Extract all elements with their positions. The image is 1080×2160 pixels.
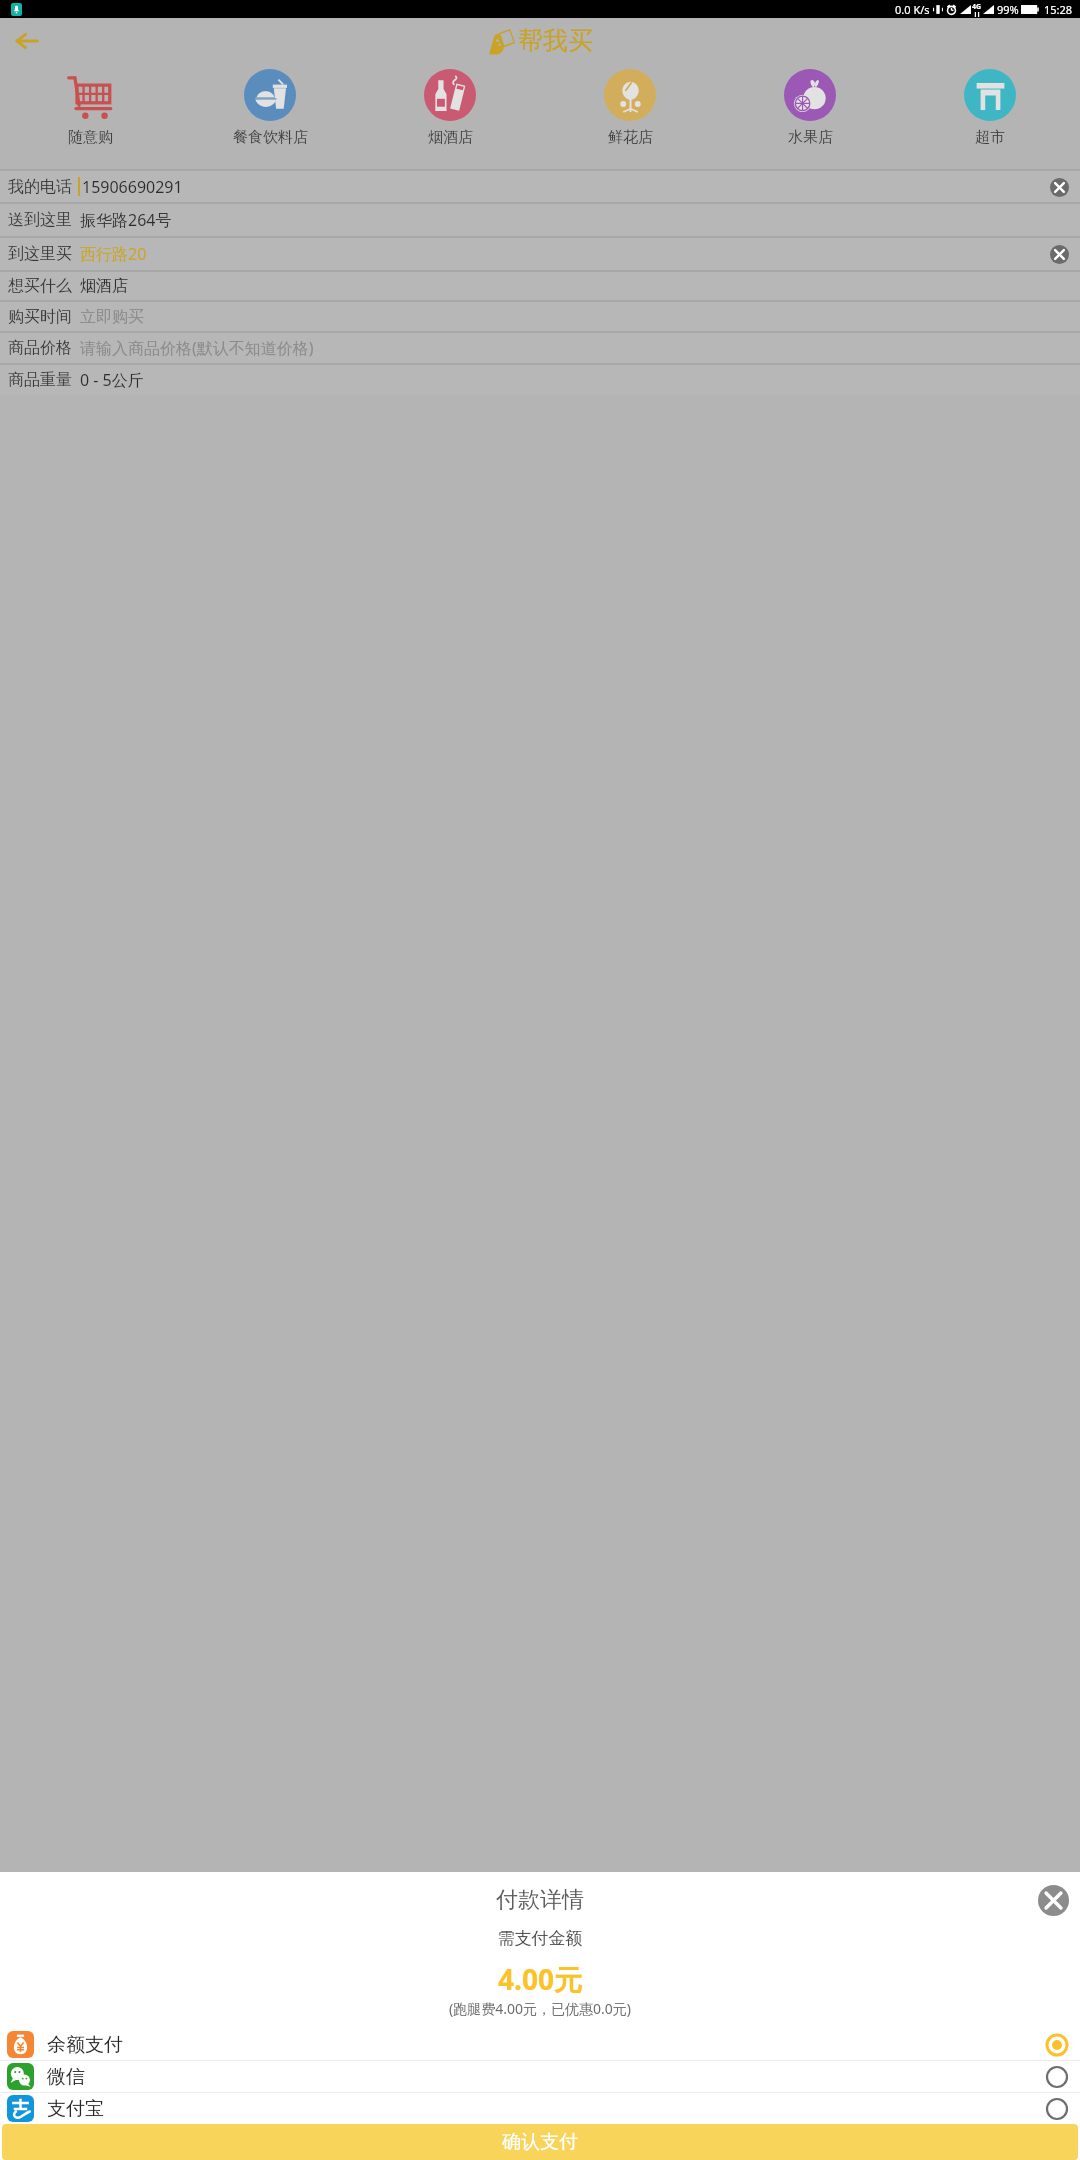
button[interactable]: 到这里买 bbox=[0, 238, 1080, 270]
staticText: 水果店 bbox=[788, 128, 833, 147]
staticText: 振华路264号 bbox=[80, 209, 172, 231]
button[interactable]: Back bbox=[5, 19, 49, 63]
button[interactable]: 商品价格 bbox=[0, 333, 1080, 363]
staticText: 我的电话 bbox=[8, 177, 72, 197]
button[interactable]: 超市 bbox=[900, 69, 1080, 157]
staticText: 随意购 bbox=[68, 128, 113, 147]
button[interactable]: 确认支付 bbox=[2, 2124, 1078, 2160]
staticText: 想买什么 bbox=[8, 276, 72, 296]
staticText: 购买时间 bbox=[8, 307, 72, 327]
button[interactable]: 微信 bbox=[0, 2061, 1080, 2092]
staticText: 确认支付 bbox=[502, 2130, 578, 2154]
staticText: (跑腿费4.00元，已优惠0.0元) bbox=[0, 1999, 1080, 2018]
staticText: 0 - 5公斤 bbox=[80, 369, 144, 391]
staticText: 付款详情 bbox=[496, 1886, 584, 1914]
button[interactable]: 我的电话 bbox=[0, 171, 1080, 202]
staticText: 99% bbox=[997, 2, 1019, 17]
button[interactable]: Close bbox=[1034, 1881, 1072, 1919]
staticText: 鲜花店 bbox=[608, 128, 653, 147]
button[interactable]: Clear bbox=[1046, 241, 1072, 267]
button[interactable]: 购买时间 bbox=[0, 302, 1080, 331]
staticText: 商品价格 bbox=[8, 338, 72, 358]
button[interactable]: Clear bbox=[1046, 174, 1072, 200]
staticText: 餐食饮料店 bbox=[233, 128, 308, 147]
staticText: 烟酒店 bbox=[80, 276, 128, 296]
staticText: 支付宝 bbox=[47, 2097, 104, 2121]
staticText: 立即购买 bbox=[80, 307, 144, 327]
staticText: 请输入商品价格(默认不知道价格) bbox=[80, 337, 314, 359]
staticText: 西行路20 bbox=[80, 243, 147, 265]
button[interactable]: 餐食饮料店 bbox=[180, 69, 360, 157]
staticText: 4G bbox=[972, 2, 982, 12]
button[interactable]: 烟酒店 bbox=[360, 69, 540, 157]
button[interactable]: 鲜花店 bbox=[540, 69, 720, 157]
button[interactable]: 余额支付 bbox=[0, 2029, 1080, 2060]
staticText: 送到这里 bbox=[8, 210, 72, 230]
staticText: 超市 bbox=[975, 128, 1005, 147]
staticText: 需支付金额 bbox=[0, 1928, 1080, 1949]
button[interactable]: 商品重量 bbox=[0, 365, 1080, 395]
staticText: 商品重量 bbox=[8, 370, 72, 390]
staticText: 15906690291 bbox=[82, 176, 183, 198]
staticText: 帮我买 bbox=[518, 25, 593, 56]
staticText: 15:28 bbox=[1044, 2, 1073, 17]
staticText: 烟酒店 bbox=[428, 128, 473, 147]
button[interactable]: 想买什么 bbox=[0, 272, 1080, 300]
staticText: 余额支付 bbox=[47, 2033, 123, 2057]
staticText: 4.00元 bbox=[0, 1960, 1080, 1998]
button[interactable]: 送到这里 bbox=[0, 204, 1080, 236]
button[interactable]: 支付宝 bbox=[0, 2093, 1080, 2124]
button[interactable]: 水果店 bbox=[720, 69, 900, 157]
staticText: 到这里买 bbox=[8, 244, 72, 264]
staticText: 微信 bbox=[47, 2065, 85, 2089]
staticText: 0.0 K/s bbox=[895, 2, 930, 17]
button[interactable]: 随意购 bbox=[0, 69, 180, 157]
